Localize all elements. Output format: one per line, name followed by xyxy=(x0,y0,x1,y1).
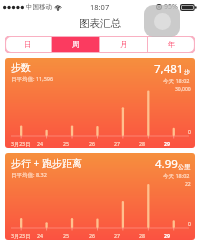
button[interactable]: 步行 + 跑步距离 xyxy=(5,153,195,240)
staticText: 月 xyxy=(120,40,128,49)
button[interactable]: 周 xyxy=(52,36,99,53)
staticText: 28 xyxy=(139,232,145,239)
button[interactable]: 步数 xyxy=(5,58,195,148)
staticText: 今天 18:02 xyxy=(163,172,190,180)
staticText: 26 xyxy=(89,140,95,147)
staticText: 28 xyxy=(139,140,145,147)
staticText: 24 xyxy=(37,232,43,239)
staticText: 日平均值: 11,596 xyxy=(11,75,54,83)
staticText: 27 xyxy=(114,232,120,239)
staticText: 29 xyxy=(164,140,170,147)
staticText: 日 xyxy=(24,40,32,49)
staticText: 7,481 xyxy=(154,61,184,77)
staticText: 95% xyxy=(164,2,178,12)
staticText: 日平均值: 8.32 xyxy=(11,171,47,179)
staticText: 25 xyxy=(63,140,69,147)
button[interactable]: 月 xyxy=(100,36,147,53)
staticText: 图表汇总 xyxy=(79,17,121,30)
button[interactable]: AssistiveTouch xyxy=(144,5,180,37)
staticText: 4.99 xyxy=(155,156,178,172)
staticText: 3月23日 xyxy=(11,232,31,239)
staticText: 步数 xyxy=(11,61,31,74)
staticText: 0 xyxy=(188,221,191,228)
staticText: 30,000 xyxy=(175,86,191,93)
staticText: 步行 + 跑步距离 xyxy=(11,156,82,170)
staticText: 0 xyxy=(188,129,191,136)
staticText: 今天 18:02 xyxy=(163,77,190,85)
staticText: 29 xyxy=(164,232,170,239)
staticText: 中国移动 xyxy=(26,3,52,11)
staticText: 22 xyxy=(185,181,191,188)
button[interactable]: 日 xyxy=(5,36,51,53)
staticText: 27 xyxy=(114,140,120,147)
staticText: 步 xyxy=(184,68,190,76)
staticText: 24 xyxy=(37,140,43,147)
staticText: 18:07 xyxy=(90,2,110,12)
button[interactable]: 年 xyxy=(148,36,195,53)
staticText: 3月23日 xyxy=(11,140,31,147)
staticText: 25 xyxy=(63,232,69,239)
staticText: 周 xyxy=(72,40,80,49)
staticText: 26 xyxy=(89,232,95,239)
staticText: 年 xyxy=(168,40,176,49)
staticText: 公里 xyxy=(178,163,190,171)
